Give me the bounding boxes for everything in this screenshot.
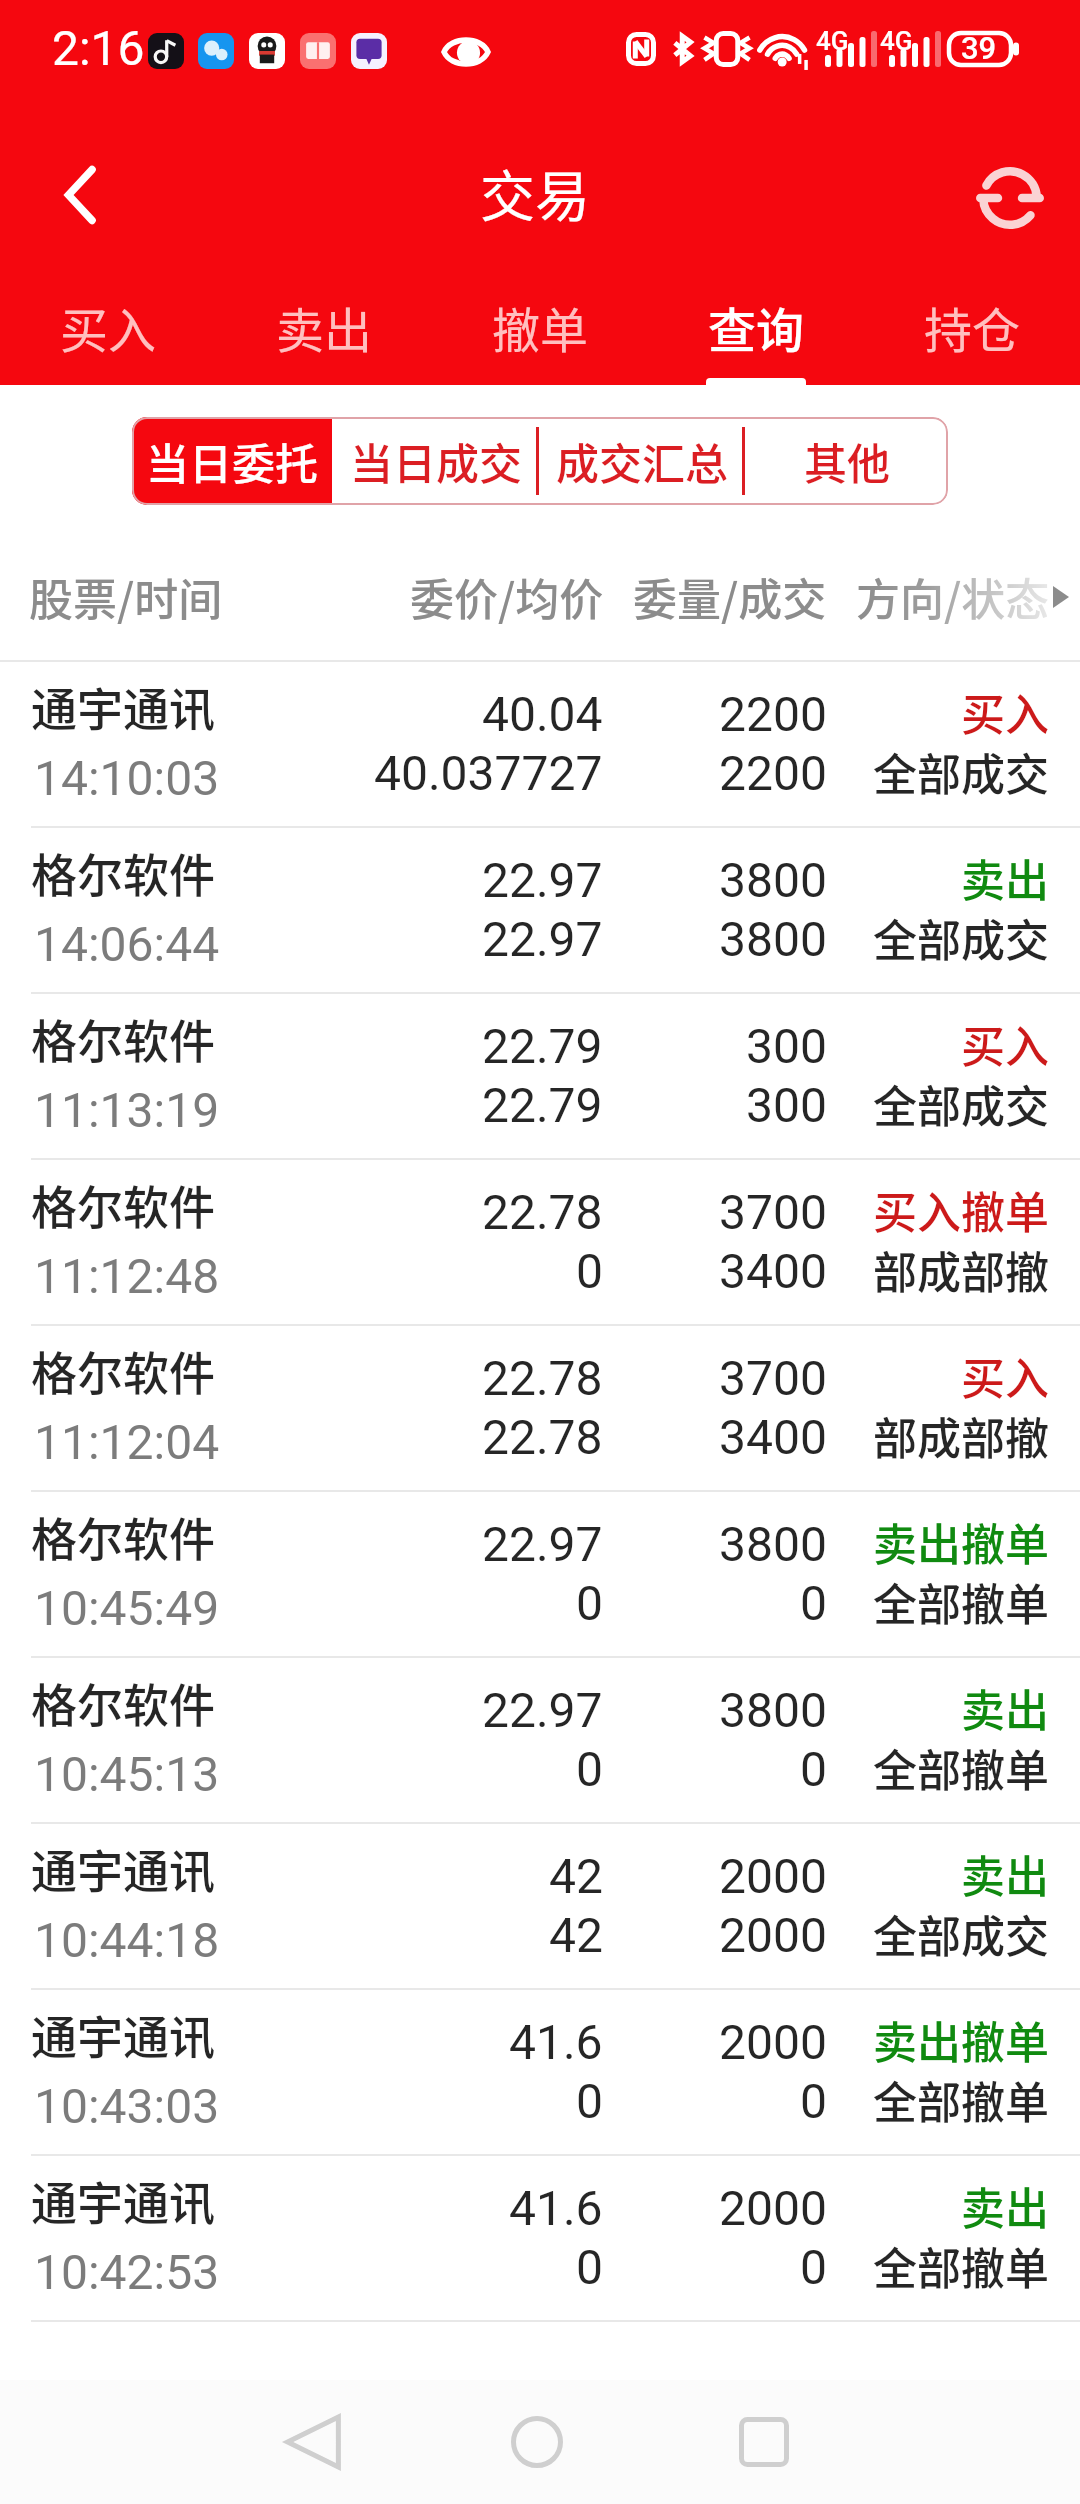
button[interactable]: Back	[26, 137, 141, 252]
button[interactable]: 其他	[745, 417, 948, 505]
button[interactable]: 当日委托	[132, 417, 332, 505]
staticText: 股票/时间	[29, 565, 223, 629]
staticText: 全部撤单	[873, 1736, 1049, 1800]
staticText: 全部成交	[873, 1072, 1049, 1136]
staticText: 格尔软件	[31, 1171, 215, 1238]
button[interactable]: 通宇通讯	[0, 1824, 1080, 1990]
staticText: 通宇通讯	[31, 673, 215, 740]
staticText: 22.78	[482, 1184, 603, 1240]
staticText: 0	[800, 1741, 827, 1797]
button[interactable]: Home	[477, 2380, 597, 2504]
button[interactable]: 格尔软件	[0, 828, 1080, 994]
staticText: 委量/成交	[633, 565, 827, 629]
button[interactable]: 当日成交	[332, 417, 539, 505]
staticText: 买入	[961, 680, 1049, 744]
staticText: 2:16	[52, 20, 145, 76]
staticText: 22.97	[482, 1682, 603, 1738]
staticText: 全部成交	[873, 740, 1049, 804]
staticText: 0	[576, 1243, 603, 1299]
staticText: 3800	[719, 911, 827, 967]
staticText: 3400	[719, 1243, 827, 1299]
staticText: 2000	[719, 1848, 827, 1904]
staticText: 格尔软件	[31, 1337, 215, 1404]
staticText: 42	[549, 1907, 603, 1963]
staticText: 2000	[719, 2014, 827, 2070]
button[interactable]: 卖出	[216, 280, 432, 385]
staticText: 22.79	[482, 1018, 603, 1074]
staticText: 全部撤单	[873, 2234, 1049, 2298]
staticText: 撤单	[492, 292, 589, 362]
button[interactable]: 格尔软件	[0, 1326, 1080, 1492]
staticText: 3700	[719, 1184, 827, 1240]
staticText: 卖出	[961, 846, 1049, 910]
staticText: 卖出	[276, 292, 373, 362]
staticText: 2000	[719, 1907, 827, 1963]
staticText: 40.04	[482, 686, 603, 742]
staticText: 0	[800, 2073, 827, 2129]
button[interactable]: 通宇通讯	[0, 1990, 1080, 2156]
staticText: 10:43:03	[34, 2078, 220, 2134]
staticText: 其他	[804, 430, 890, 492]
staticText: 格尔软件	[31, 1669, 215, 1736]
staticText: 41.6	[509, 2180, 603, 2236]
staticText: 全部撤单	[873, 2068, 1049, 2132]
staticText: 2000	[719, 2180, 827, 2236]
staticText: 22.97	[482, 1516, 603, 1572]
staticText: 卖出	[961, 1676, 1049, 1740]
button[interactable]: 格尔软件	[0, 1658, 1080, 1824]
staticText: 方向/状态	[856, 565, 1050, 629]
button[interactable]: 查询	[648, 280, 864, 385]
staticText: 22.78	[482, 1350, 603, 1406]
staticText: 22.78	[482, 1409, 603, 1465]
staticText: 10:42:53	[34, 2244, 220, 2300]
staticText: 4G	[880, 26, 913, 56]
button[interactable]: Back	[253, 2380, 373, 2504]
staticText: 格尔软件	[31, 1503, 215, 1570]
staticText: 卖出	[961, 2174, 1049, 2238]
button[interactable]: 买入	[0, 280, 216, 385]
staticText: 买入	[961, 1012, 1049, 1076]
button[interactable]: 通宇通讯	[0, 2156, 1080, 2322]
staticText: 通宇通讯	[31, 2167, 215, 2234]
staticText: 卖出撤单	[873, 2008, 1049, 2072]
staticText: 22.97	[482, 911, 603, 967]
staticText: 当日委托	[146, 430, 318, 492]
button[interactable]: 成交汇总	[539, 417, 745, 505]
staticText: 委价/均价	[410, 565, 604, 629]
button[interactable]: 格尔软件	[0, 994, 1080, 1160]
staticText: 全部成交	[873, 1902, 1049, 1966]
staticText: 11:12:48	[34, 1248, 220, 1304]
staticText: 卖出	[961, 1842, 1049, 1906]
staticText: 交易	[480, 152, 591, 232]
staticText: 卖出撤单	[873, 1510, 1049, 1574]
staticText: 10:45:13	[34, 1746, 220, 1802]
staticText: 全部成交	[873, 906, 1049, 970]
staticText: 3800	[719, 1682, 827, 1738]
staticText: 0	[576, 1575, 603, 1631]
button[interactable]: 格尔软件	[0, 1492, 1080, 1658]
staticText: 22.97	[482, 852, 603, 908]
button[interactable]: 通宇通讯	[0, 662, 1080, 828]
staticText: 查询	[708, 292, 805, 362]
button[interactable]: 撤单	[432, 280, 648, 385]
staticText: 持仓	[924, 292, 1021, 362]
staticText: 部成部撤	[873, 1404, 1049, 1468]
button[interactable]: Recents	[704, 2380, 824, 2504]
staticText: 0	[800, 2239, 827, 2295]
button[interactable]: 持仓	[864, 280, 1080, 385]
button[interactable]: Refresh	[952, 140, 1067, 255]
staticText: 成交汇总	[556, 430, 728, 492]
staticText: 买入	[60, 292, 157, 362]
staticText: 39	[961, 30, 997, 66]
staticText: 格尔软件	[31, 1005, 215, 1072]
staticText: 0	[576, 2239, 603, 2295]
staticText: 300	[746, 1018, 827, 1074]
staticText: 22.79	[482, 1077, 603, 1133]
staticText: 2200	[719, 686, 827, 742]
staticText: 通宇通讯	[31, 2001, 215, 2068]
staticText: 10:44:18	[34, 1912, 220, 1968]
staticText: 2200	[719, 745, 827, 801]
button[interactable]: 格尔软件	[0, 1160, 1080, 1326]
staticText: 0	[576, 1741, 603, 1797]
staticText: 3700	[719, 1350, 827, 1406]
